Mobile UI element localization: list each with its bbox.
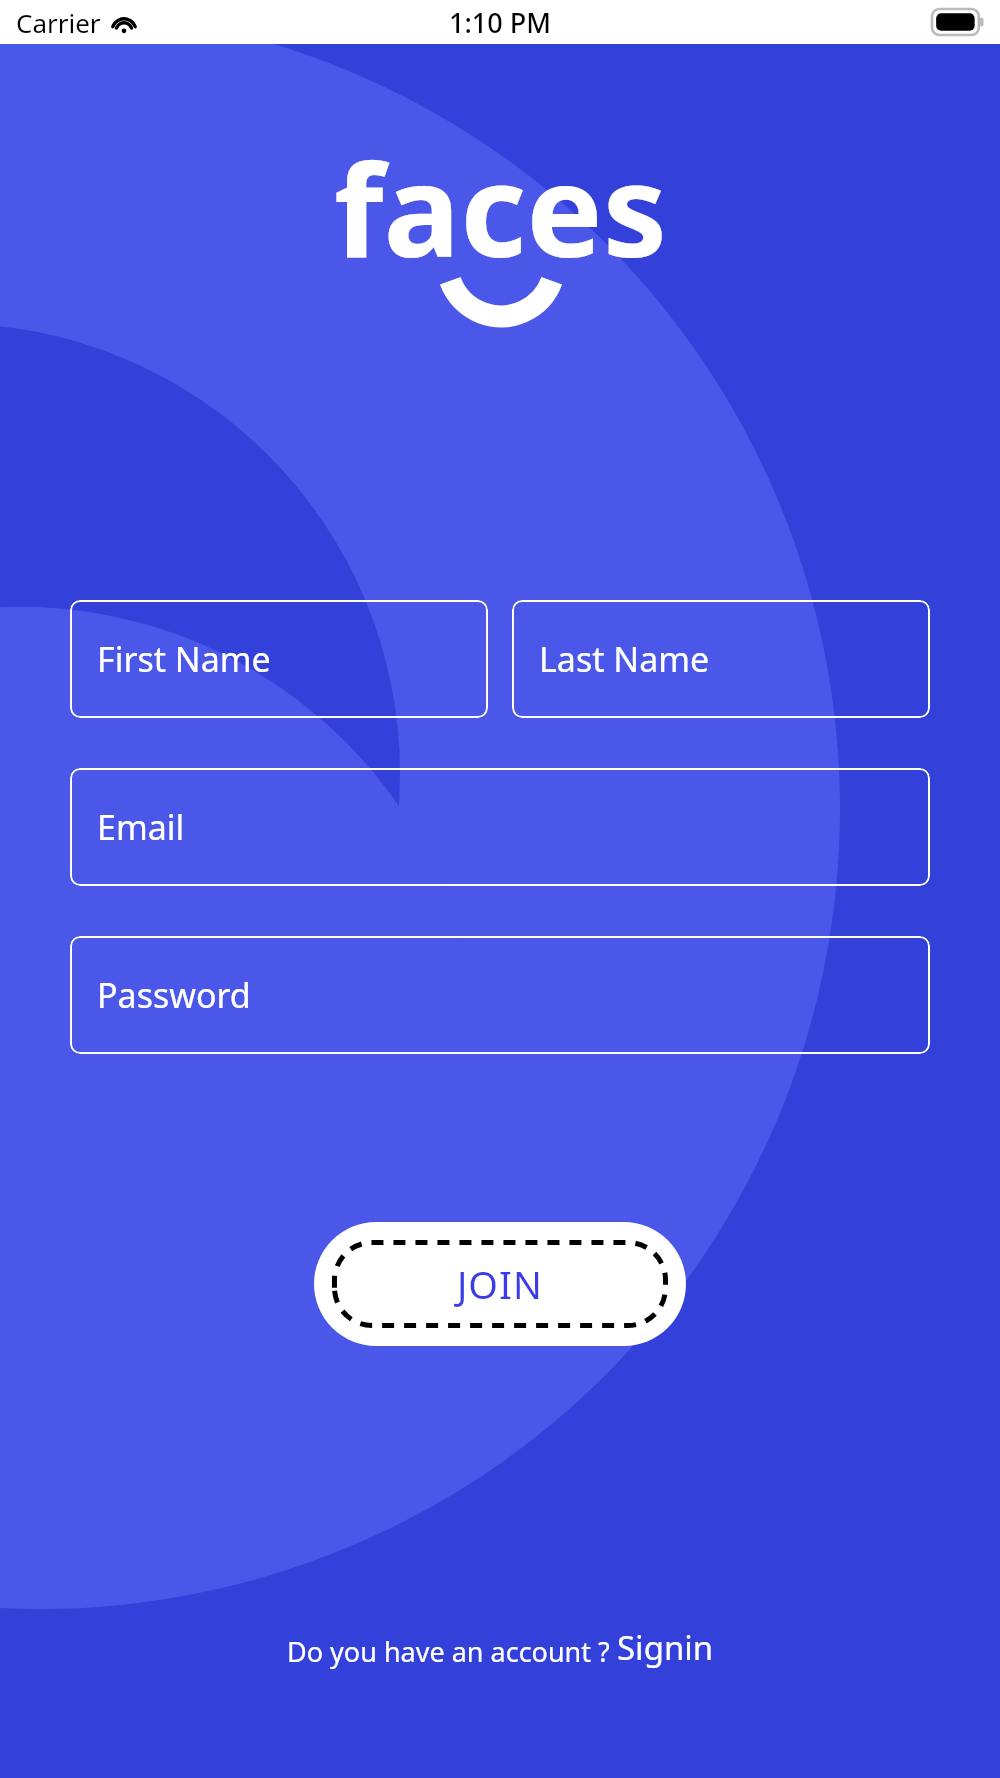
staticText: Do you have an account ? (287, 1633, 617, 1670)
staticText: First Name (97, 636, 271, 682)
button[interactable]: Password (70, 936, 930, 1054)
button[interactable]: Do you have an account ? (287, 1625, 714, 1670)
button[interactable]: JOIN (314, 1222, 686, 1346)
staticText: faces (334, 120, 667, 294)
staticText: Last Name (539, 636, 710, 682)
staticText: JOIN (457, 1258, 543, 1310)
button[interactable]: Last Name (512, 600, 930, 718)
staticText: Carrier (16, 5, 101, 40)
staticText: Password (97, 972, 251, 1018)
staticText: 1:10 PM (449, 4, 551, 41)
button[interactable]: First Name (70, 600, 488, 718)
staticText: Signin (617, 1625, 714, 1670)
button[interactable]: Email (70, 768, 930, 886)
staticText: Email (97, 804, 185, 850)
